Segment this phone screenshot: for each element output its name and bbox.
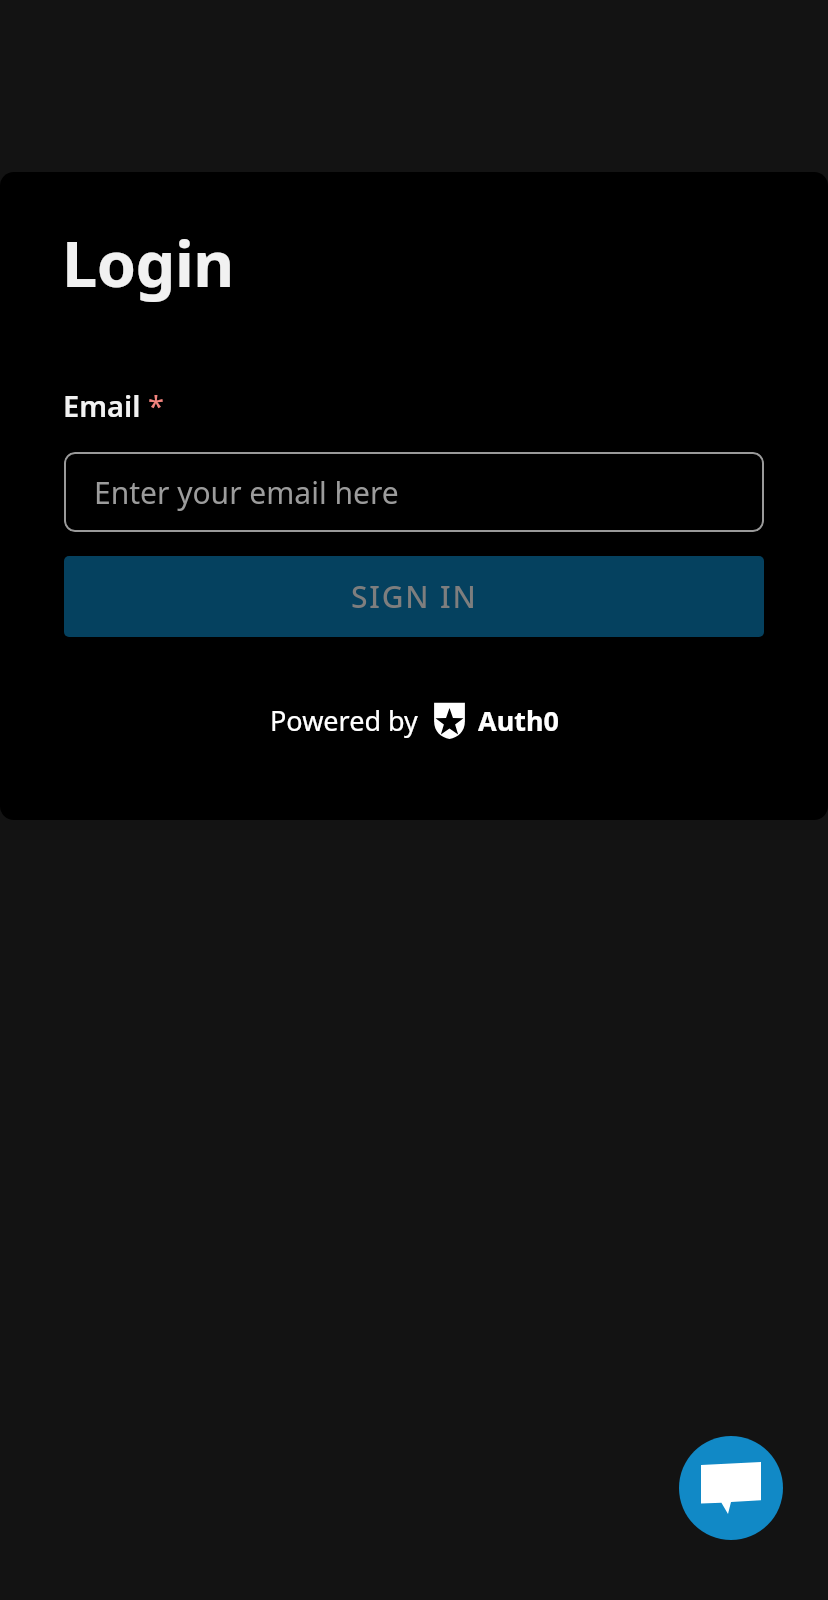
button[interactable]: Open chat	[679, 1436, 783, 1540]
staticText: Powered by	[270, 702, 418, 739]
staticText: Login	[62, 220, 234, 306]
staticText: Email	[63, 386, 141, 425]
button[interactable]: Enter your email here	[64, 452, 764, 532]
staticText: Auth0	[478, 702, 559, 739]
button[interactable]: SIGN IN	[64, 556, 764, 637]
staticText: SIGN IN	[351, 576, 478, 617]
staticText: *	[148, 386, 164, 425]
staticText: Enter your email here	[94, 472, 399, 513]
